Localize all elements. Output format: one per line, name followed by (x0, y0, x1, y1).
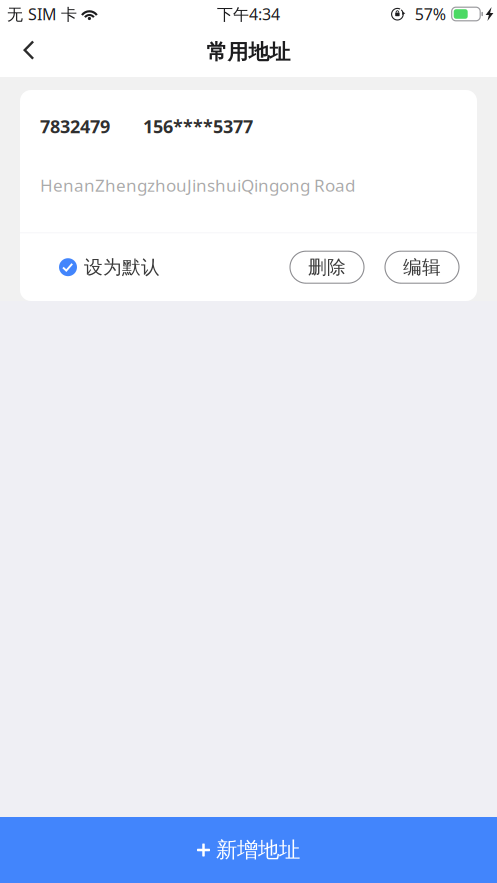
staticText: 编辑 (403, 255, 441, 279)
staticText: 设为默认 (84, 255, 160, 279)
staticText: 常用地址 (206, 39, 290, 65)
staticText: HenanZhengzhouJinshuiQingong Road (40, 174, 355, 197)
staticText: 156****5377 (143, 114, 253, 138)
staticText: 57% (415, 3, 446, 25)
button[interactable]: 新增地址 (0, 817, 497, 883)
button[interactable]: 删除 (290, 251, 364, 283)
staticText: 下午4:34 (217, 3, 280, 25)
staticText: 新增地址 (216, 837, 300, 863)
staticText: 无 SIM 卡 (7, 3, 77, 25)
staticText: 删除 (308, 255, 346, 279)
button[interactable]: 设为默认 (20, 241, 160, 293)
button[interactable]: 编辑 (385, 251, 459, 283)
staticText: 7832479 (40, 114, 110, 138)
button[interactable]: Back (0, 28, 58, 77)
